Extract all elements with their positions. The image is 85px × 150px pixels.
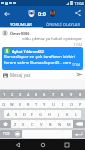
button[interactable]: Settings <box>13 130 22 138</box>
button[interactable]: Attach image <box>2 72 8 78</box>
staticText: 6 <box>43 92 46 97</box>
staticText: Bursaslispor en çok taraftarın birbiri f… <box>4 54 81 65</box>
button[interactable]: V <box>37 120 46 128</box>
staticText: C <box>31 122 34 127</box>
staticText: Z <box>14 122 17 127</box>
button[interactable]: Ömer0306 <box>0 28 85 47</box>
staticText: T <box>35 102 38 107</box>
button[interactable]: Aykut Yıldırım432 <box>2 47 83 70</box>
staticText: X <box>22 122 25 127</box>
button[interactable]: L <box>72 110 81 118</box>
button[interactable]: Enter <box>72 130 85 138</box>
staticText: F <box>31 112 34 117</box>
button[interactable]: C <box>28 120 37 128</box>
button[interactable]: F <box>28 110 36 118</box>
staticText: O <box>70 102 74 107</box>
button[interactable]: ?123 <box>0 130 13 138</box>
button[interactable]: 5 <box>32 90 40 98</box>
button[interactable]: U <box>49 100 58 108</box>
staticText: A <box>7 112 10 117</box>
button[interactable]: 1 <box>0 90 8 98</box>
staticText: 0 <box>79 92 82 97</box>
button[interactable]: E <box>16 100 24 108</box>
button[interactable]: 4 <box>24 90 32 98</box>
button[interactable]: Recents <box>61 139 73 150</box>
staticText: 1 <box>3 92 6 97</box>
button[interactable]: D <box>20 110 28 118</box>
button[interactable]: Z <box>11 120 19 128</box>
staticText: Mesaj yaz <box>10 72 31 78</box>
staticText: 5 <box>35 92 38 97</box>
staticText: ÖNEMLİ OLAYLAR <box>46 22 81 27</box>
button[interactable]: 2 <box>8 90 16 98</box>
staticText: M <box>67 122 71 127</box>
staticText: Aykut Yıldırım432 <box>12 49 44 54</box>
staticText: K <box>66 112 69 117</box>
staticText: 17:04 <box>72 63 81 67</box>
staticText: 9 <box>70 92 73 97</box>
staticText: N <box>58 122 62 127</box>
button[interactable]: S <box>12 110 20 118</box>
staticText: I <box>62 102 64 107</box>
staticText: oldu çıkmaz ya futbol oynanıyor <box>2 36 82 41</box>
staticText: 2 <box>11 92 14 97</box>
staticText: W <box>10 102 14 107</box>
button[interactable]: N <box>55 120 64 128</box>
button[interactable]: ÖNEMLİ OLAYLAR <box>42 20 85 28</box>
staticText: Ömer0306 <box>10 31 30 36</box>
button[interactable]: 6 <box>40 90 49 98</box>
button[interactable]: B <box>46 120 55 128</box>
staticText: V <box>40 122 43 127</box>
staticText: ?123 <box>3 132 10 136</box>
button[interactable]: T <box>32 100 40 108</box>
button[interactable]: Share <box>72 7 84 19</box>
button[interactable]: Shift <box>0 120 11 128</box>
button[interactable]: W <box>8 100 16 108</box>
button[interactable]: Back <box>1 8 12 19</box>
button[interactable]: 7 <box>49 90 58 98</box>
button[interactable]: Back <box>12 139 24 150</box>
staticText: B <box>49 122 52 127</box>
button[interactable]: 8 <box>58 90 67 98</box>
staticText: G <box>39 112 42 117</box>
staticText: 17:04 <box>2 43 82 47</box>
button[interactable]: 0 <box>76 90 85 98</box>
button[interactable]: 3 <box>16 90 24 98</box>
staticText: E <box>19 102 22 107</box>
staticText: R <box>27 102 30 107</box>
staticText: L <box>75 112 78 117</box>
button[interactable]: K <box>63 110 72 118</box>
staticText: H <box>48 112 51 117</box>
button[interactable]: P <box>76 100 85 108</box>
staticText: P <box>79 102 82 107</box>
button[interactable]: X <box>19 120 28 128</box>
staticText: S <box>15 112 18 117</box>
button[interactable]: YORUMLAR <box>0 20 42 28</box>
staticText: 4 <box>27 92 30 97</box>
button[interactable]: Q <box>0 100 8 108</box>
button[interactable]: I <box>58 100 67 108</box>
staticText: Q <box>2 102 6 107</box>
button[interactable]: A <box>4 110 12 118</box>
staticText: 8 <box>61 92 64 97</box>
button[interactable]: M <box>64 120 73 128</box>
staticText: YORUMLAR <box>10 22 32 27</box>
button[interactable]: J <box>54 110 63 118</box>
button[interactable]: H <box>45 110 54 118</box>
staticText: J <box>58 112 60 117</box>
button[interactable]: Backspace <box>73 120 85 128</box>
button[interactable]: Y <box>40 100 49 108</box>
button[interactable]: R <box>24 100 32 108</box>
staticText: 0:0 <box>38 10 46 17</box>
staticText: 17:04 <box>74 1 84 6</box>
staticText: 3 <box>19 92 22 97</box>
staticText: 7 <box>52 92 55 97</box>
staticText: Y <box>43 102 46 107</box>
button[interactable]: 9 <box>67 90 76 98</box>
button[interactable]: Home <box>37 139 49 150</box>
button[interactable]: O <box>67 100 76 108</box>
button[interactable]: Send <box>74 70 84 79</box>
button[interactable]: G <box>36 110 45 118</box>
